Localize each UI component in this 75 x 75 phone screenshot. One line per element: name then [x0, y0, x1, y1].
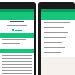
button[interactable]: [41, 20, 75, 25]
button[interactable]: [41, 45, 75, 50]
button[interactable]: [41, 40, 75, 45]
button[interactable]: [41, 50, 75, 55]
button[interactable]: [41, 25, 75, 30]
button[interactable]: [41, 35, 75, 40]
button[interactable]: [41, 30, 75, 35]
